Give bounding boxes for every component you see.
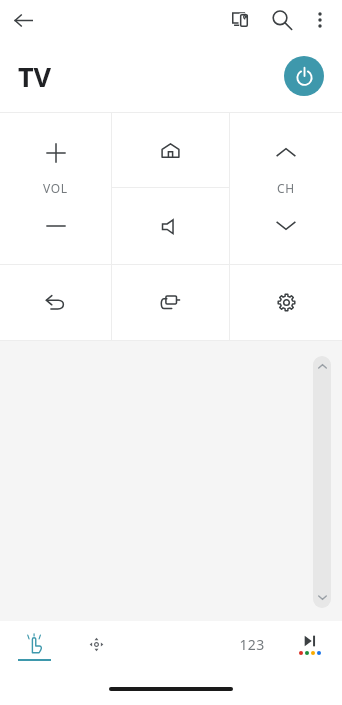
- staticText: TV: [18, 58, 52, 95]
- staticText: VOL: [43, 180, 68, 196]
- staticText: CH: [277, 180, 295, 196]
- button[interactable]: Home: [112, 113, 229, 187]
- button[interactable]: More options: [302, 2, 338, 38]
- button[interactable]: Back: [6, 3, 40, 37]
- button[interactable]: Number pad: [226, 621, 278, 673]
- button[interactable]: Input source: [112, 265, 229, 340]
- button[interactable]: Touchpad mode: [11, 621, 57, 673]
- button[interactable]: Cast to device: [222, 0, 262, 40]
- button[interactable]: Scroll: [313, 356, 331, 608]
- button[interactable]: Power: [284, 56, 324, 96]
- button[interactable]: Channel up: [230, 113, 342, 180]
- button[interactable]: Playback controls: [286, 621, 334, 673]
- button[interactable]: Channel down: [230, 196, 342, 264]
- button[interactable]: D-pad mode: [76, 621, 116, 673]
- button[interactable]: Search: [262, 0, 302, 40]
- staticText: 123: [239, 635, 265, 654]
- button[interactable]: Volume up: [0, 113, 111, 180]
- button[interactable]: Back: [0, 265, 111, 340]
- button[interactable]: Touchpad: [0, 341, 342, 621]
- button[interactable]: Settings: [230, 265, 342, 340]
- button[interactable]: Mute: [112, 188, 229, 264]
- button[interactable]: Volume down: [0, 196, 111, 264]
